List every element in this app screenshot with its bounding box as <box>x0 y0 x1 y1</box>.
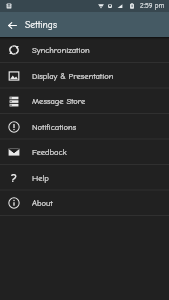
button[interactable]: Message Store <box>0 88 169 113</box>
staticText: Feedback <box>32 147 67 157</box>
staticText: Settings <box>25 19 57 30</box>
staticText: About <box>32 198 53 208</box>
button[interactable]: Synchronization <box>0 37 169 62</box>
staticText: Help <box>32 173 49 183</box>
button[interactable]: Back <box>0 13 24 37</box>
button[interactable]: ? <box>0 165 169 190</box>
button[interactable]: Feedback <box>0 139 169 164</box>
button[interactable]: Display & Presentation <box>0 63 169 88</box>
staticText: ? <box>11 171 17 185</box>
staticText: Notifications <box>32 122 77 132</box>
button[interactable]: Notifications <box>0 114 169 139</box>
staticText: 2:59 pm <box>140 2 165 10</box>
staticText: Synchronization <box>32 45 90 55</box>
staticText: Message Store <box>32 96 86 106</box>
staticText: Display & Presentation <box>32 71 114 81</box>
button[interactable]: About <box>0 190 169 215</box>
